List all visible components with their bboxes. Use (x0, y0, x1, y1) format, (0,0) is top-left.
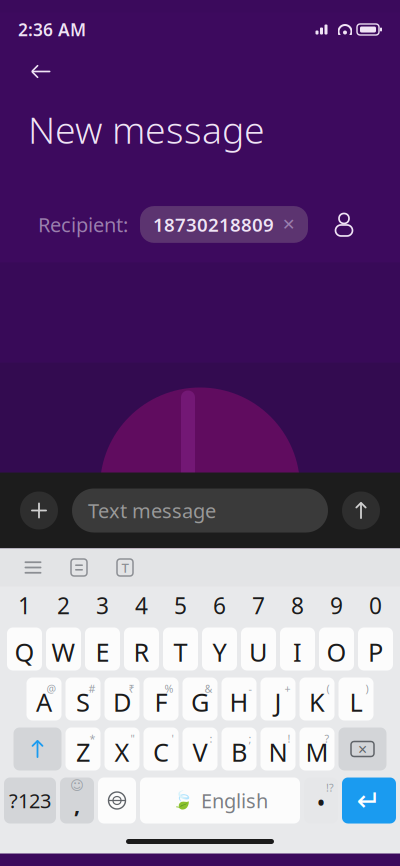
button[interactable]: * (65, 727, 100, 770)
staticText: ( (326, 681, 329, 696)
staticText: Q (14, 635, 34, 669)
button[interactable]: : (182, 727, 217, 770)
button[interactable]: Enter (342, 777, 396, 823)
button[interactable]: T (163, 627, 198, 670)
staticText: ) (365, 681, 368, 696)
staticText: F (154, 685, 167, 719)
button[interactable]: 3 (83, 590, 122, 620)
button[interactable]: ' (143, 727, 178, 770)
staticText: × (358, 738, 367, 760)
button[interactable]: ₹ (104, 677, 139, 720)
button[interactable]: 🍃 (140, 777, 300, 823)
staticText: B (231, 735, 247, 769)
button[interactable]: Add attachment (20, 491, 58, 529)
staticText: !? (326, 780, 334, 795)
staticText: ! (287, 731, 290, 746)
staticText: * (89, 731, 95, 746)
staticText: J (274, 685, 281, 719)
button[interactable]: 18730218809 (140, 206, 308, 243)
button[interactable]: Back (0, 46, 400, 88)
button[interactable]: # (65, 677, 100, 720)
button[interactable]: ?123 (4, 777, 56, 823)
staticText: ✕ (282, 215, 295, 234)
staticText: W (51, 635, 75, 669)
button[interactable]: - (221, 677, 256, 720)
staticText: D (113, 685, 131, 719)
staticText: N (268, 735, 287, 769)
button[interactable]: I (280, 627, 315, 670)
button[interactable]: ! (260, 727, 295, 770)
staticText: Z (76, 735, 90, 769)
button[interactable]: R (124, 627, 159, 670)
button[interactable]: Shift (13, 727, 61, 770)
staticText: ? (324, 731, 329, 746)
button[interactable]: 0 (356, 590, 395, 620)
staticText: O (326, 635, 346, 669)
staticText: A (36, 685, 52, 719)
staticText: X (114, 735, 129, 769)
staticText: Y (212, 635, 226, 669)
button[interactable]: Text editing (110, 553, 140, 581)
staticText: 8 (291, 590, 304, 620)
staticText: U (249, 635, 268, 669)
button[interactable]: + (260, 677, 295, 720)
button[interactable]: ; (221, 727, 256, 770)
staticText: ₹ (128, 681, 134, 696)
staticText: T (121, 559, 128, 576)
staticText: ↵ (356, 784, 381, 817)
staticText: 7 (252, 590, 265, 620)
button[interactable]: E (85, 627, 120, 670)
staticText: C (153, 735, 169, 769)
staticText: G (191, 685, 209, 719)
staticText: H (229, 685, 248, 719)
staticText: 5 (174, 590, 187, 620)
button[interactable]: Comma (60, 777, 94, 823)
button[interactable]: 8 (278, 590, 317, 620)
staticText: ?123 (9, 787, 51, 814)
staticText: ; (248, 731, 251, 746)
staticText: + (284, 681, 290, 696)
staticText: M (305, 735, 328, 769)
staticText: # (88, 681, 95, 696)
button[interactable]: 4 (122, 590, 161, 620)
staticText: 2 (57, 590, 70, 620)
button[interactable]: 2 (44, 590, 83, 620)
button[interactable]: Choose contact (326, 211, 362, 237)
button[interactable]: O (319, 627, 354, 670)
button[interactable]: ? (299, 727, 334, 770)
button[interactable]: Y (202, 627, 237, 670)
button[interactable]: Q (7, 627, 42, 670)
staticText: Recipient: (38, 211, 128, 238)
staticText: & (204, 681, 212, 696)
button[interactable]: & (182, 677, 217, 720)
button[interactable]: Change language (98, 777, 136, 823)
button[interactable]: ( (299, 677, 334, 720)
staticText: R (133, 635, 149, 669)
staticText: , (74, 791, 80, 819)
button[interactable]: Keyboard menu (18, 553, 48, 581)
staticText: • (317, 790, 324, 815)
button[interactable]: P (358, 627, 393, 670)
button[interactable]: 6 (200, 590, 239, 620)
staticText: : (209, 731, 212, 746)
button[interactable]: % (143, 677, 178, 720)
button[interactable]: Text message (72, 488, 328, 532)
staticText: " (130, 731, 134, 746)
button[interactable]: 1 (5, 590, 44, 620)
staticText: % (164, 681, 173, 696)
button[interactable]: 5 (161, 590, 200, 620)
button[interactable]: @ (26, 677, 61, 720)
button[interactable]: 9 (317, 590, 356, 620)
staticText: E (95, 635, 109, 669)
button[interactable]: Backspace (338, 727, 386, 770)
button[interactable]: " (104, 727, 139, 770)
button[interactable]: Send (342, 491, 380, 529)
staticText: @ (46, 681, 56, 696)
button[interactable]: W (46, 627, 81, 670)
button[interactable]: 7 (239, 590, 278, 620)
staticText: Text message (88, 497, 216, 524)
button[interactable]: Clipboard (64, 553, 94, 581)
button[interactable]: U (241, 627, 276, 670)
button[interactable]: ) (338, 677, 373, 720)
button[interactable]: Period (304, 777, 338, 823)
